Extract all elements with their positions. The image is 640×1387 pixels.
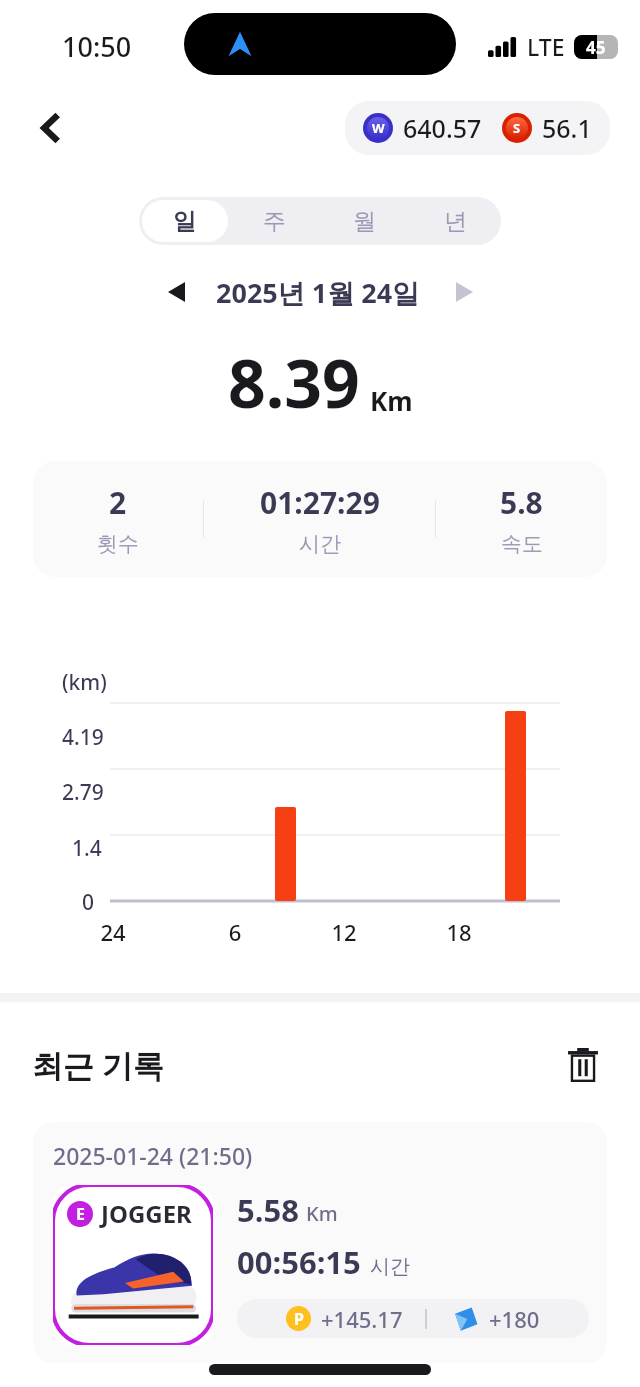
- staticText: 8.39: [228, 337, 360, 427]
- button[interactable]: 일: [139, 197, 229, 245]
- staticText: 5.58: [237, 1189, 299, 1231]
- staticText: 횟수: [97, 531, 139, 557]
- staticText: 00:56:15: [237, 1241, 361, 1283]
- staticText: 24: [97, 917, 129, 947]
- staticText: 56.1: [542, 111, 592, 145]
- staticText: 10:50: [62, 28, 132, 65]
- staticText: 5.8: [500, 482, 543, 523]
- button[interactable]: 2: [33, 461, 607, 577]
- staticText: 4.19: [62, 723, 104, 752]
- staticText: LTE: [527, 31, 565, 62]
- staticText: 01:27:29: [260, 482, 380, 523]
- button[interactable]: 월: [319, 197, 410, 245]
- staticText: 일: [173, 207, 196, 236]
- button[interactable]: Next day: [442, 270, 486, 314]
- staticText: Km: [370, 383, 413, 418]
- button[interactable]: 년: [410, 197, 501, 245]
- staticText: 최근 기록: [32, 1044, 165, 1086]
- staticText: 시간: [299, 531, 341, 557]
- button[interactable]: Previous day: [154, 270, 198, 314]
- button[interactable]: W: [345, 101, 610, 155]
- staticText: 6: [219, 917, 251, 947]
- staticText: +180: [489, 1304, 540, 1334]
- staticText: W: [372, 119, 385, 137]
- staticText: 2: [109, 482, 127, 523]
- staticText: 45: [586, 36, 606, 59]
- staticText: 주: [263, 207, 286, 236]
- staticText: Km: [306, 1200, 338, 1227]
- staticText: P: [294, 1308, 304, 1330]
- button[interactable]: Delete records: [558, 1040, 608, 1090]
- button[interactable]: 주: [229, 197, 319, 245]
- staticText: S: [513, 119, 521, 137]
- staticText: +145.17: [321, 1304, 403, 1334]
- staticText: JOGGER: [101, 1197, 192, 1230]
- staticText: 1.4: [72, 834, 102, 863]
- staticText: 2025-01-24 (21:50): [53, 1140, 253, 1171]
- staticText: 속도: [501, 531, 543, 557]
- staticText: 월: [353, 207, 376, 236]
- staticText: 18: [443, 917, 475, 947]
- staticText: 2025년 1월 24일: [216, 274, 420, 311]
- staticText: E: [76, 1203, 85, 1225]
- staticText: 12: [328, 917, 360, 947]
- staticText: 시간: [370, 1254, 410, 1279]
- staticText: 640.57: [403, 111, 482, 145]
- staticText: 0: [82, 888, 95, 917]
- staticText: (km): [62, 668, 107, 697]
- staticText: 2.79: [62, 778, 104, 807]
- staticText: 년: [444, 207, 467, 236]
- button[interactable]: Back: [24, 100, 80, 156]
- button[interactable]: 2025-01-24 (21:50): [33, 1122, 607, 1363]
